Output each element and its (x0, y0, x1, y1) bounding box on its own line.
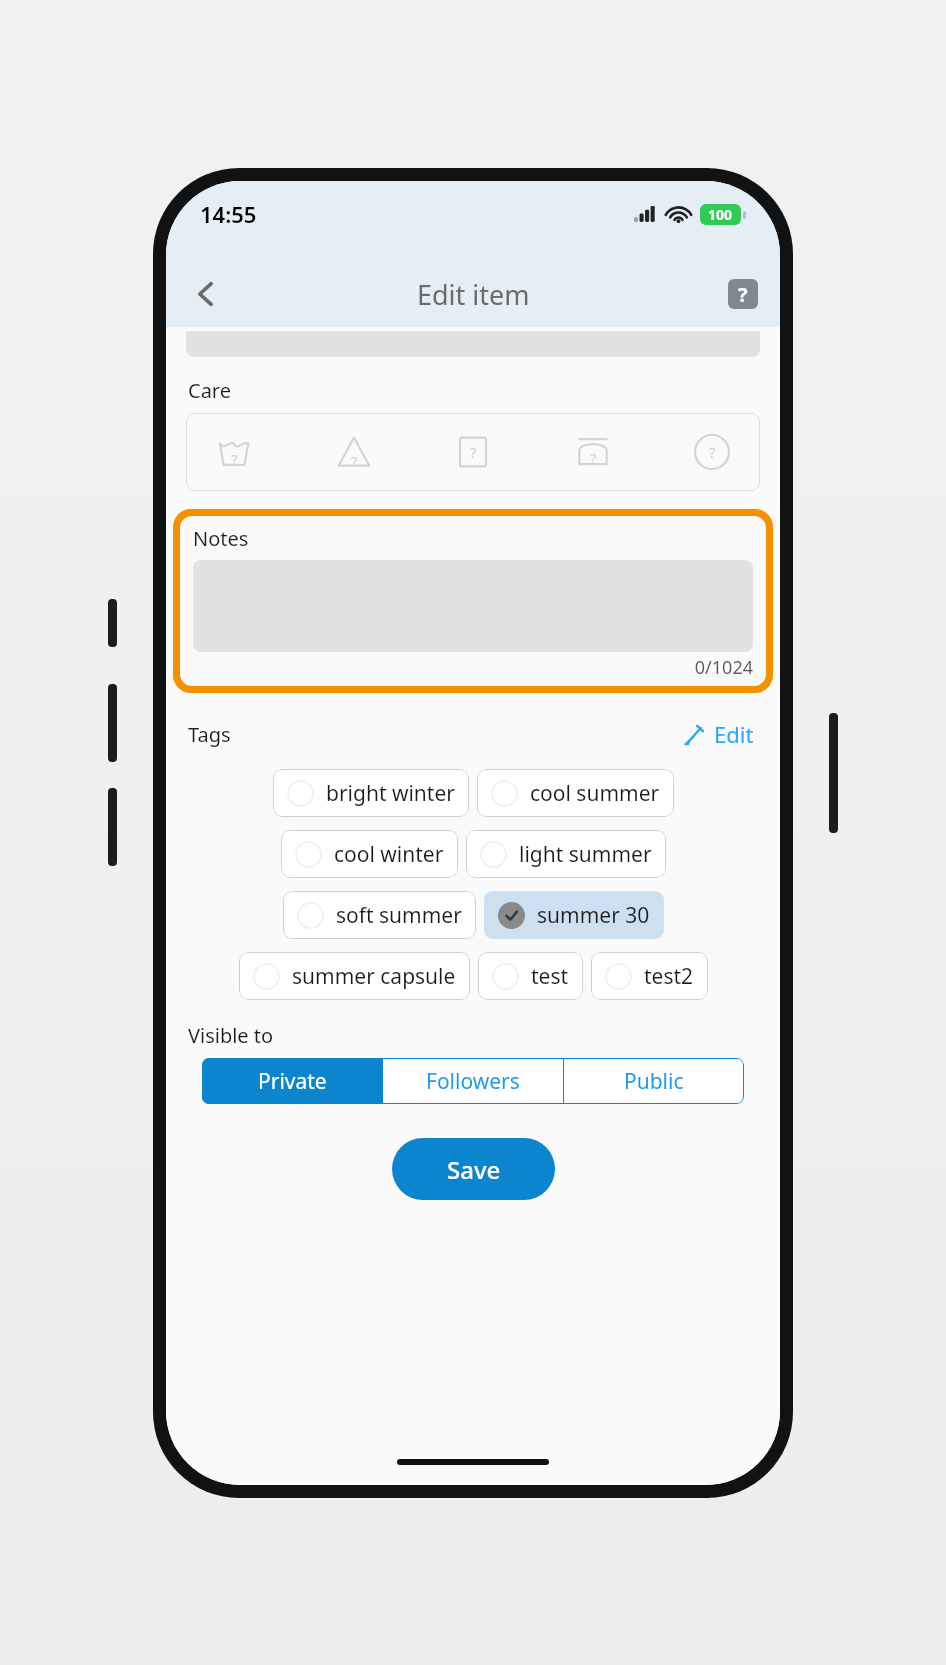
staticText: cool summer (530, 779, 660, 808)
button[interactable]: summer 30 (484, 891, 664, 939)
staticText: summer 30 (537, 901, 650, 930)
staticText: summer capsule (292, 962, 456, 991)
staticText: 14:55 (200, 199, 257, 229)
staticText: bright winter (326, 779, 455, 808)
button[interactable]: Public (564, 1058, 744, 1104)
staticText: Notes (193, 525, 249, 552)
staticText: Save (447, 1153, 501, 1186)
staticText: ? (351, 451, 358, 471)
staticText: soft summer (336, 901, 462, 930)
button[interactable]: Followers (383, 1058, 563, 1104)
staticText: Public (624, 1067, 684, 1096)
staticText: cool winter (334, 840, 444, 869)
button[interactable]: test2 (591, 952, 708, 1000)
staticText: ? (709, 442, 716, 462)
staticText: ? (470, 442, 477, 462)
staticText: test (531, 962, 569, 991)
button[interactable]: light summer (466, 830, 666, 878)
staticText: light summer (519, 840, 652, 869)
button[interactable]: summer capsule (239, 952, 470, 1000)
button[interactable]: cool summer (477, 769, 674, 817)
button[interactable]: Notes (180, 516, 766, 686)
button[interactable]: Help (728, 279, 758, 309)
staticText: Tags (188, 721, 231, 748)
button[interactable]: Care symbols (186, 413, 760, 491)
staticText: Visible to (188, 1022, 274, 1049)
button[interactable]: Save (392, 1138, 555, 1200)
button[interactable]: Edit (678, 715, 758, 753)
staticText: Edit item (417, 276, 530, 313)
staticText: Care (188, 377, 231, 404)
staticText: ? (738, 281, 748, 308)
button[interactable]: bright winter (273, 769, 469, 817)
staticText: ? (590, 448, 597, 468)
staticText: ? (231, 449, 238, 469)
staticText: test2 (644, 962, 694, 991)
staticText: 0/1024 (193, 655, 753, 680)
staticText: Followers (426, 1067, 520, 1096)
button[interactable]: soft summer (283, 891, 476, 939)
staticText: 100 (708, 205, 733, 224)
button[interactable]: test (478, 952, 583, 1000)
staticText: Edit (714, 719, 754, 749)
staticText: Private (258, 1067, 327, 1096)
button[interactable]: Back (182, 270, 230, 318)
button[interactable]: cool winter (281, 830, 458, 878)
button[interactable]: Private (202, 1058, 382, 1104)
